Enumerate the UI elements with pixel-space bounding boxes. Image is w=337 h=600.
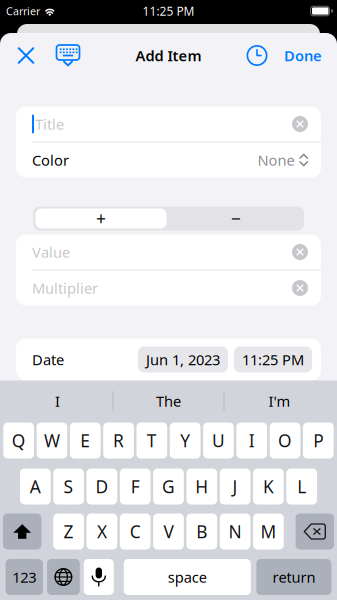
staticText: return [272, 567, 315, 587]
staticText: Date [32, 350, 64, 369]
staticText: space [168, 567, 207, 587]
staticText: K [263, 475, 274, 498]
button[interactable]: 123 [6, 559, 43, 595]
staticText: Jun 1, 2023 [146, 350, 220, 369]
staticText: None [257, 150, 294, 170]
staticText: U [212, 429, 225, 452]
button[interactable]: Shift [3, 513, 41, 549]
button[interactable]: T [136, 422, 167, 458]
staticText: The [156, 391, 181, 411]
button[interactable]: Clear text [292, 116, 308, 132]
staticText: Done [284, 46, 322, 65]
staticText: Add Item [135, 46, 201, 65]
staticText: Q [12, 429, 26, 452]
button[interactable]: W [37, 422, 67, 458]
button[interactable]: Dictation [84, 559, 114, 595]
staticText: 123 [12, 567, 36, 587]
staticText: 11:25 PM [142, 3, 194, 19]
button[interactable]: Clear text [292, 244, 308, 260]
staticText: G [162, 475, 175, 498]
button[interactable]: Next Keyboard [47, 559, 80, 595]
staticText: B [196, 520, 207, 543]
button[interactable]: Jun 1, 2023 [138, 346, 228, 372]
staticText: E [80, 429, 90, 452]
staticText: Color [32, 150, 69, 170]
staticText: V [163, 520, 173, 543]
staticText: I'm [268, 391, 290, 411]
button[interactable]: Recents [237, 32, 277, 78]
button[interactable]: space [124, 559, 251, 595]
button[interactable]: E [70, 422, 101, 458]
button[interactable]: Y [170, 422, 200, 458]
staticText: C [130, 520, 141, 543]
button[interactable]: L [286, 468, 317, 504]
button[interactable]: B [186, 513, 217, 549]
staticText: F [131, 475, 140, 498]
button[interactable]: I [2, 380, 112, 421]
staticText: W [44, 429, 60, 452]
staticText: P [313, 429, 323, 452]
button[interactable]: U [203, 422, 234, 458]
staticText: Value [32, 242, 70, 262]
button[interactable]: Z [53, 513, 84, 549]
staticText: M [260, 520, 276, 543]
staticText: X [97, 520, 107, 543]
button[interactable]: Color [16, 142, 321, 177]
staticText: N [229, 520, 242, 543]
staticText: Carrier [6, 4, 40, 18]
staticText: I [55, 391, 60, 411]
button[interactable]: Delete [296, 513, 334, 549]
button[interactable]: O [270, 422, 300, 458]
button[interactable]: I [236, 422, 267, 458]
button[interactable]: Clear text [292, 280, 308, 296]
button[interactable]: Close [5, 32, 47, 78]
button[interactable]: J [220, 468, 250, 504]
staticText: I [249, 429, 255, 452]
button[interactable]: Done [284, 32, 322, 78]
staticText: Y [180, 429, 190, 452]
button[interactable]: R [103, 422, 134, 458]
staticText: L [297, 475, 306, 498]
button[interactable]: + [33, 206, 168, 230]
staticText: O [278, 429, 292, 452]
button[interactable]: P [303, 422, 334, 458]
staticText: + [96, 207, 106, 230]
button[interactable]: Q [3, 422, 34, 458]
button[interactable]: Dismiss Keyboard [47, 32, 89, 78]
button[interactable]: The [113, 380, 223, 421]
staticText: R [113, 429, 124, 452]
button[interactable]: N [220, 513, 250, 549]
button[interactable]: G [153, 468, 184, 504]
button[interactable]: V [153, 513, 184, 549]
staticText: J [233, 475, 238, 498]
button[interactable]: C [120, 513, 151, 549]
staticText: S [64, 475, 74, 498]
button[interactable]: H [186, 468, 217, 504]
button[interactable]: return [256, 559, 331, 595]
staticText: Title [35, 114, 64, 134]
button[interactable]: F [120, 468, 151, 504]
button[interactable]: M [253, 513, 284, 549]
button[interactable]: − [168, 206, 303, 230]
button[interactable]: K [253, 468, 284, 504]
staticText: H [195, 475, 208, 498]
button[interactable]: S [53, 468, 84, 504]
staticText: Z [64, 520, 74, 543]
staticText: Multiplier [32, 278, 98, 298]
button[interactable]: I'm [224, 380, 334, 421]
staticText: T [147, 429, 157, 452]
staticText: 11:25 PM [242, 350, 304, 369]
button[interactable]: 11:25 PM [234, 346, 312, 372]
staticText: A [30, 475, 41, 498]
button[interactable]: X [87, 513, 117, 549]
staticText: D [95, 475, 108, 498]
staticText: − [231, 207, 241, 230]
button[interactable]: D [87, 468, 117, 504]
button[interactable]: A [20, 468, 51, 504]
